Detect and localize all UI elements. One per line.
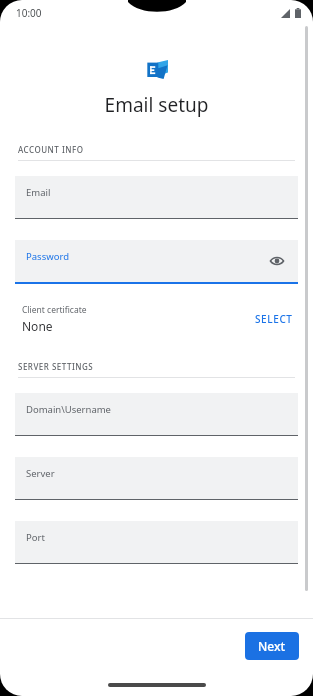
staticText: Server <box>26 467 55 480</box>
button[interactable]: Next <box>245 632 299 660</box>
staticText: Email <box>26 186 51 199</box>
staticText: 10:00 <box>16 6 42 20</box>
other: Microsoft Exchange <box>146 60 168 80</box>
button[interactable]: Password <box>15 240 298 284</box>
button[interactable]: Domain\Username <box>15 393 298 436</box>
button[interactable]: Email <box>15 176 298 219</box>
staticText: Password <box>26 250 69 263</box>
button[interactable]: Show password <box>266 250 288 272</box>
staticText: SERVER SETTINGS <box>18 361 94 372</box>
staticText: Domain\Username <box>26 403 111 416</box>
staticText: SELECT <box>255 312 293 326</box>
staticText: None <box>22 318 53 334</box>
button[interactable]: Port <box>15 521 298 564</box>
staticText: ACCOUNT INFO <box>18 144 84 155</box>
staticText: Port <box>26 531 45 544</box>
button[interactable]: Client certificate <box>22 304 299 334</box>
button[interactable]: SELECT <box>249 307 299 331</box>
staticText: Next <box>258 638 286 654</box>
button[interactable]: Server <box>15 457 298 500</box>
staticText: Email setup <box>0 92 313 118</box>
staticText: Client certificate <box>22 304 87 316</box>
